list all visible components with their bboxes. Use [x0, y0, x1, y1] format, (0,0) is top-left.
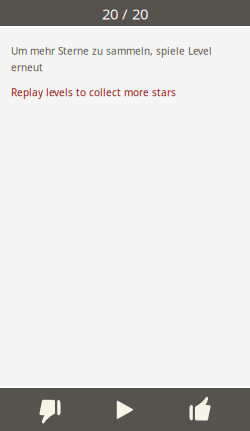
button[interactable]: Like	[150, 388, 250, 431]
staticText: Um mehr Sterne zu sammeln, spiele Level …	[11, 44, 212, 74]
staticText: Replay levels to collect more stars	[11, 85, 176, 99]
button[interactable]: Play	[100, 388, 150, 431]
staticText: 20 / 20	[102, 4, 148, 24]
button[interactable]: Dislike	[0, 388, 100, 431]
